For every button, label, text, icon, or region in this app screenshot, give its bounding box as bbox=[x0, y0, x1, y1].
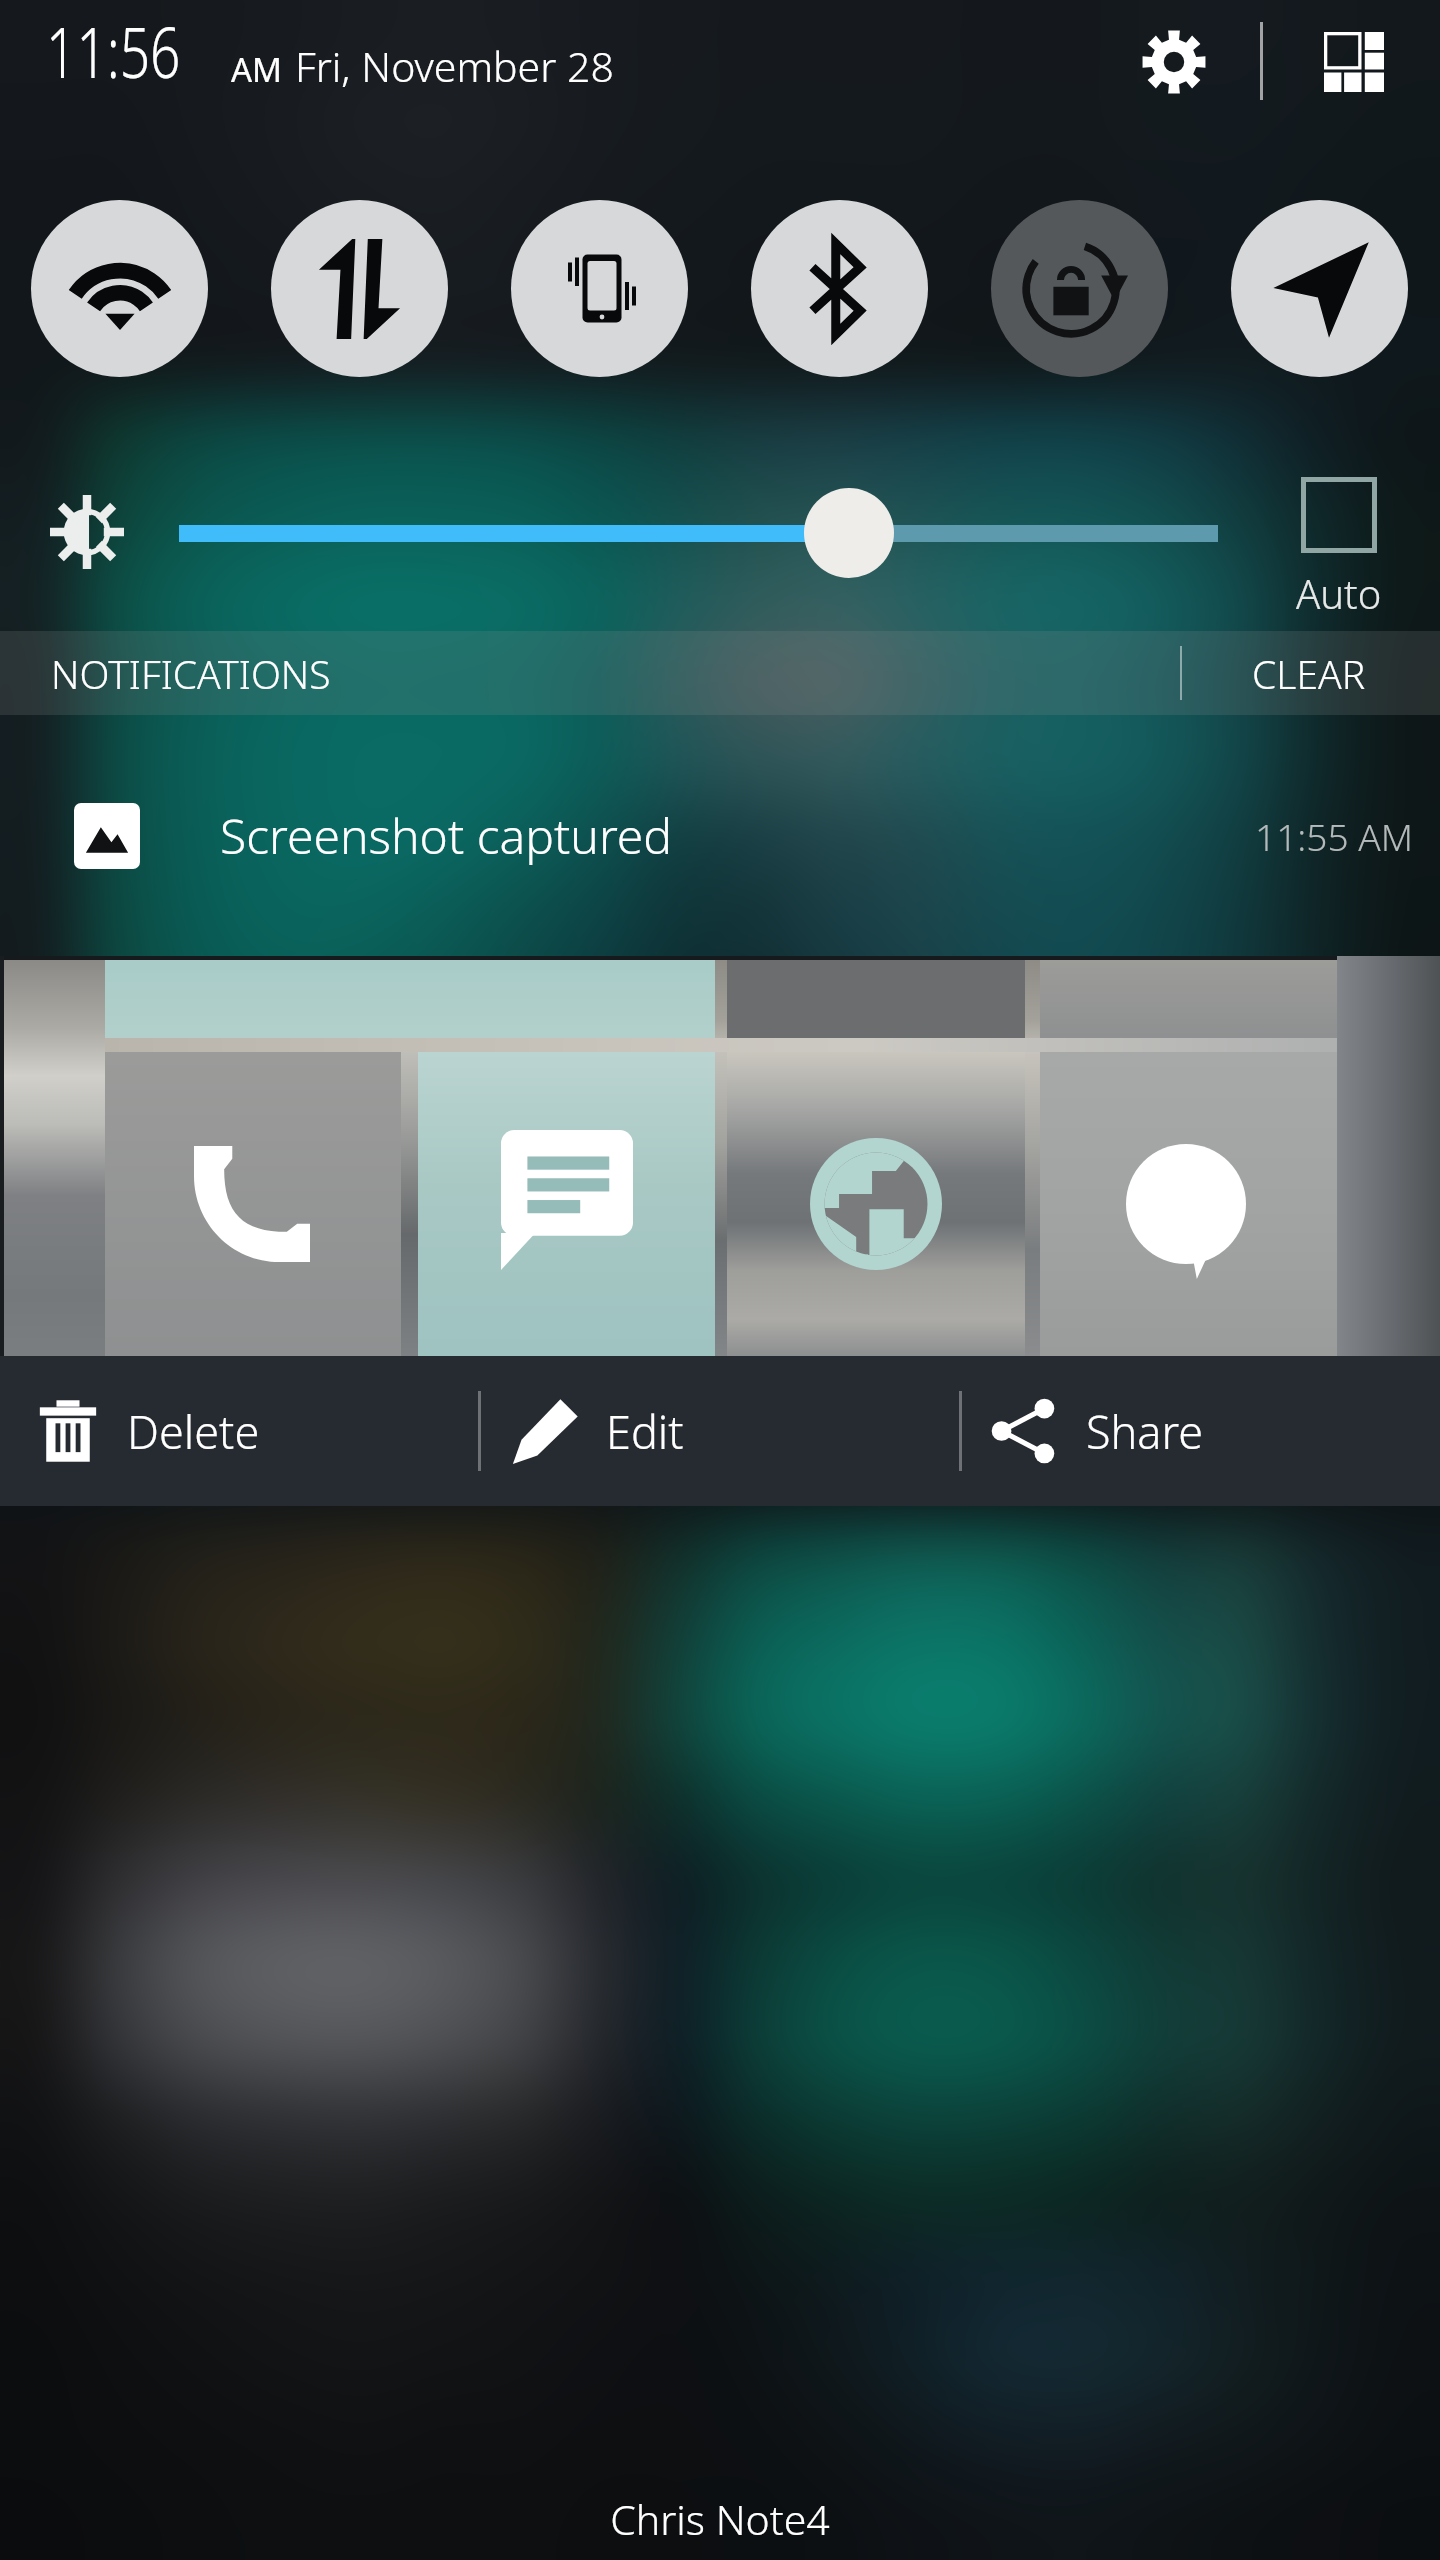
staticText: NOTIFICATIONS bbox=[51, 647, 331, 700]
staticText: 11:56 bbox=[46, 3, 180, 98]
button[interactable]: Sound bbox=[511, 200, 688, 377]
button[interactable]: Auto brightness bbox=[1296, 477, 1382, 620]
staticText: CLEAR bbox=[1252, 647, 1366, 700]
button[interactable]: Delete bbox=[0, 1356, 478, 1506]
button[interactable]: Multi window bbox=[1308, 24, 1400, 116]
staticText: Auto bbox=[1296, 566, 1382, 620]
button[interactable]: Screen rotation bbox=[991, 200, 1168, 377]
staticText: AM bbox=[231, 47, 283, 92]
button[interactable]: Bluetooth bbox=[751, 200, 928, 377]
button[interactable]: Share bbox=[962, 1356, 1440, 1506]
staticText: Share bbox=[1086, 1401, 1204, 1462]
staticText: Chris Note4 bbox=[0, 2491, 1440, 2547]
staticText: Screenshot captured bbox=[220, 803, 673, 868]
staticText: Fri, November 28 bbox=[295, 38, 614, 94]
button[interactable]: Brightness level bbox=[804, 488, 894, 578]
button[interactable]: Settings bbox=[1118, 14, 1230, 126]
staticText: Edit bbox=[606, 1401, 684, 1462]
button[interactable]: CLEAR bbox=[1190, 631, 1440, 715]
staticText: 11:55 AM bbox=[1255, 811, 1413, 861]
staticText: Delete bbox=[127, 1401, 260, 1462]
button[interactable]: Edit bbox=[481, 1356, 959, 1506]
button[interactable]: Screenshot captured bbox=[0, 715, 1440, 956]
button[interactable]: Wi-Fi bbox=[31, 200, 208, 377]
button[interactable]: NOTIFICATIONS bbox=[0, 631, 620, 715]
button[interactable]: Location bbox=[1231, 200, 1408, 377]
button[interactable]: Mobile data bbox=[271, 200, 448, 377]
